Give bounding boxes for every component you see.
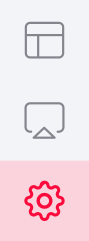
button[interactable]: AirPlay xyxy=(0,80,89,161)
button[interactable]: Settings xyxy=(0,161,89,241)
button[interactable]: Layout xyxy=(0,0,89,80)
